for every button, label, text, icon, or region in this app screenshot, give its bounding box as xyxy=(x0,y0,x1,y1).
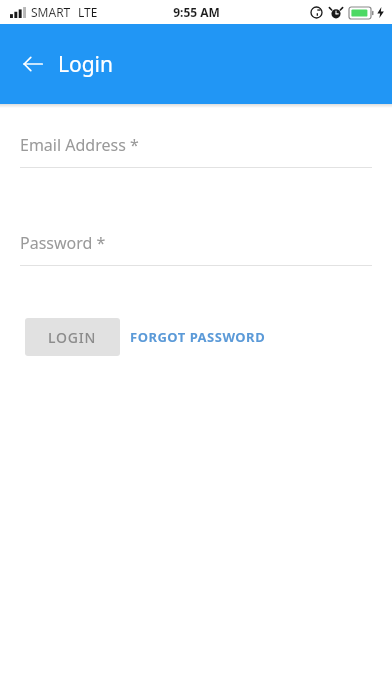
staticText: LTE xyxy=(78,4,98,20)
button[interactable]: FORGOT PASSWORD xyxy=(120,318,276,356)
button[interactable]: Email Address * xyxy=(20,134,372,168)
staticText: 9:55 AM xyxy=(173,4,220,20)
button[interactable]: LOGIN xyxy=(25,318,120,356)
staticText: SMART xyxy=(31,4,71,20)
staticText: LOGIN xyxy=(48,328,97,347)
staticText: Email Address * xyxy=(20,134,139,156)
staticText: FORGOT PASSWORD xyxy=(130,328,266,346)
button[interactable]: Password * xyxy=(20,232,372,266)
staticText: Login xyxy=(58,50,114,79)
staticText: Password * xyxy=(20,232,106,254)
button[interactable]: Back xyxy=(13,44,53,84)
